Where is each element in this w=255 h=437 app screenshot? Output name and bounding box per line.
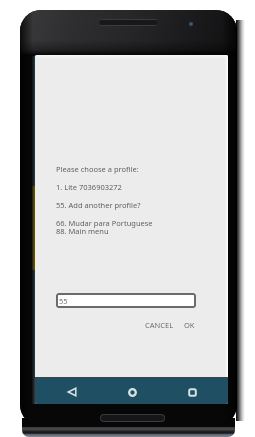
- button[interactable]: OK: [184, 320, 195, 330]
- button[interactable]: Home: [121, 381, 143, 403]
- staticText: OK: [184, 320, 195, 330]
- staticText: 88. Main menu: [56, 226, 109, 236]
- button[interactable]: Back: [61, 381, 83, 403]
- button[interactable]: 55: [56, 293, 196, 308]
- button[interactable]: CANCEL: [145, 320, 174, 330]
- staticText: CANCEL: [145, 320, 174, 330]
- button[interactable]: Recents: [181, 381, 203, 403]
- staticText: 55: [59, 296, 68, 306]
- staticText: 1. Lite 7036903272: [56, 182, 122, 192]
- staticText: 66. Mudar para Portuguese: [56, 218, 153, 228]
- staticText: Please choose a profile:: [56, 164, 139, 174]
- staticText: 55. Add another profile?: [56, 200, 141, 210]
